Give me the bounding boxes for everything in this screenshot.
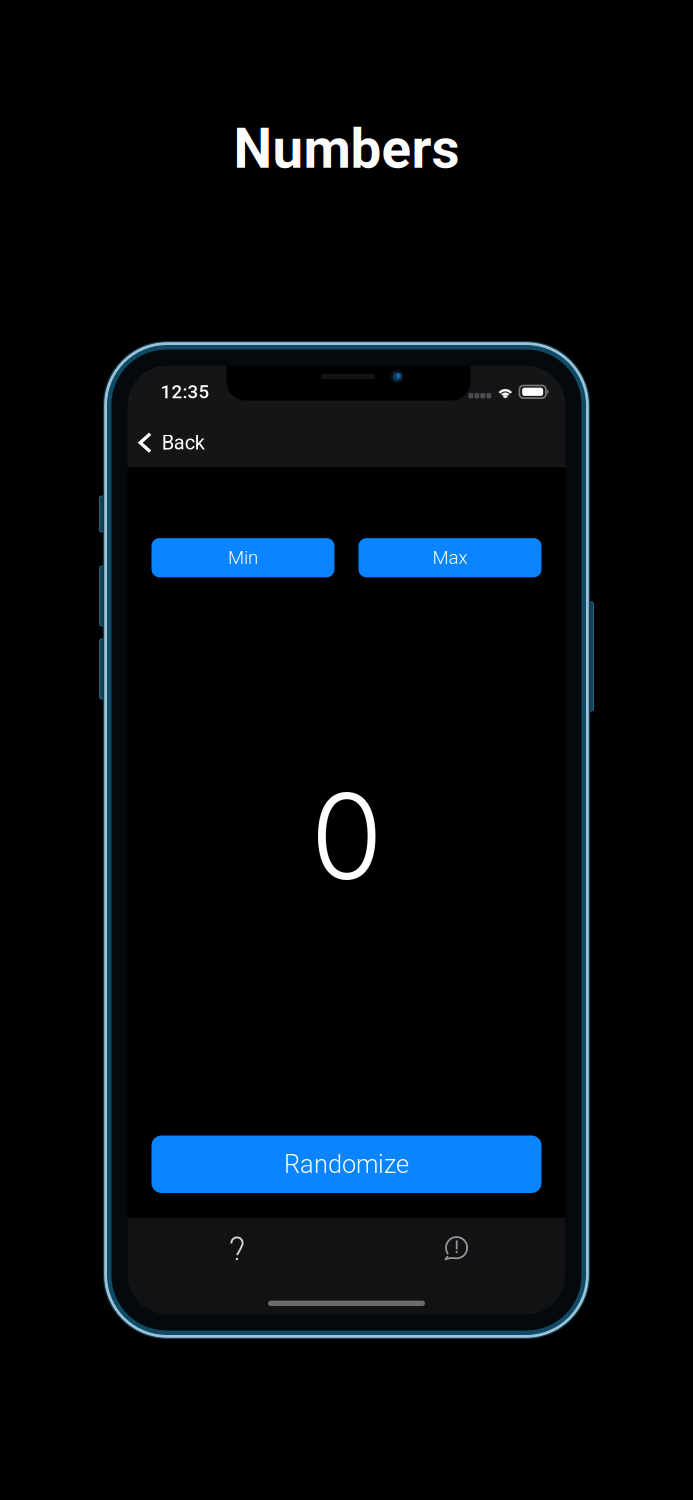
staticText: 12:35 xyxy=(160,381,209,403)
button[interactable]: Help xyxy=(127,1227,346,1271)
button[interactable]: Randomize xyxy=(151,1135,541,1193)
staticText: Back xyxy=(162,431,205,454)
button[interactable]: Send feedback xyxy=(346,1227,565,1271)
staticText: Randomize xyxy=(284,1149,409,1179)
staticText: Numbers xyxy=(233,117,459,181)
button[interactable]: Min xyxy=(151,538,334,577)
staticText: Min xyxy=(228,547,258,569)
staticText: 0 xyxy=(310,765,382,907)
staticText: Max xyxy=(432,547,467,569)
button[interactable]: Max xyxy=(358,538,541,577)
button[interactable]: Back xyxy=(127,418,219,467)
